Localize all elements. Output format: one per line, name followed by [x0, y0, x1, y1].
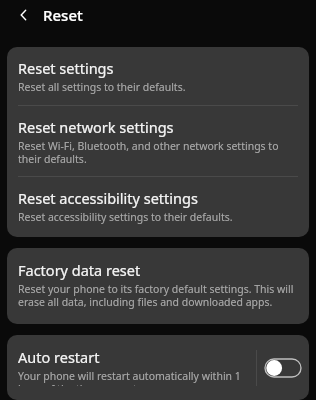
staticText: Reset Wi-Fi, Bluetooth, and other networ… — [18, 139, 279, 166]
staticText: Reset your phone to its factory default … — [18, 282, 294, 309]
button[interactable]: Reset accessibility settings — [7, 177, 309, 237]
staticText: Auto restart — [18, 347, 100, 367]
staticText: Reset accessibility settings to their de… — [18, 210, 233, 224]
staticText: Your phone will restart automatically wi… — [18, 369, 241, 386]
staticText: Reset settings — [18, 58, 114, 78]
button[interactable]: Factory data reset — [7, 248, 309, 324]
button[interactable]: Reset network settings — [7, 106, 309, 176]
staticText: Factory data reset — [18, 260, 141, 280]
button[interactable]: Back — [11, 2, 37, 28]
staticText: Reset accessibility settings — [18, 188, 198, 208]
staticText: Reset network settings — [18, 117, 174, 137]
button[interactable]: Reset settings — [7, 47, 309, 105]
button[interactable]: Auto restart — [7, 335, 256, 400]
button[interactable]: Auto restart toggle — [264, 355, 302, 381]
staticText: Reset — [43, 5, 83, 25]
staticText: Reset all settings to their defaults. — [18, 80, 186, 94]
